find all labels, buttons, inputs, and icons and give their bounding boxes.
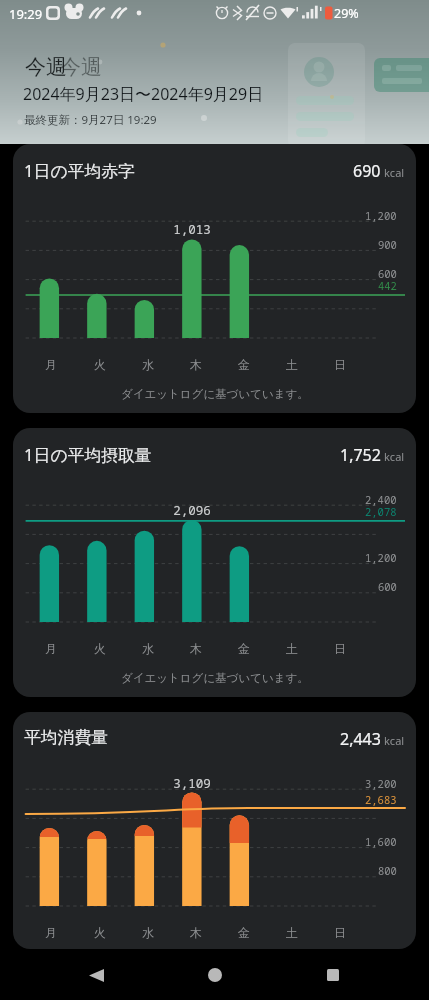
staticText: kcal bbox=[384, 165, 405, 180]
staticText: kcal bbox=[384, 733, 405, 748]
staticText: 金 bbox=[238, 925, 250, 940]
staticText: 今週 bbox=[60, 54, 102, 80]
staticText: 3,109 bbox=[173, 775, 211, 792]
staticText: 最終更新：9月27日 19:29 bbox=[24, 112, 157, 128]
staticText: 木 bbox=[190, 357, 202, 372]
staticText: 442 bbox=[378, 279, 397, 293]
staticText: 690 bbox=[353, 160, 381, 182]
staticText: 火 bbox=[94, 641, 106, 656]
staticText: 2,443 bbox=[340, 728, 381, 750]
button[interactable]: Home bbox=[192, 952, 238, 998]
button[interactable]: 平均消費量 bbox=[13, 712, 416, 949]
staticText: 水 bbox=[142, 641, 154, 656]
button[interactable]: 1日の平均摂取量 bbox=[13, 428, 416, 697]
staticText: 1,600 bbox=[365, 835, 397, 849]
staticText: 3,200 bbox=[365, 777, 397, 791]
staticText: 今週 bbox=[25, 54, 67, 80]
staticText: 600 bbox=[378, 267, 397, 281]
staticText: 2,096 bbox=[173, 502, 211, 519]
staticText: 土 bbox=[286, 925, 298, 940]
staticText: 月 bbox=[45, 925, 57, 940]
staticText: 1,200 bbox=[365, 209, 397, 223]
staticText: 1,200 bbox=[365, 551, 397, 565]
staticText: 2024年9月23日〜2024年9月29日 bbox=[23, 83, 264, 105]
staticText: ダイエットログに基づいています。 bbox=[121, 387, 309, 401]
staticText: 月 bbox=[45, 641, 57, 656]
staticText: 金 bbox=[238, 641, 250, 656]
staticText: 火 bbox=[94, 357, 106, 372]
staticText: 水 bbox=[142, 357, 154, 372]
staticText: 日 bbox=[334, 641, 346, 656]
staticText: 800 bbox=[378, 864, 397, 878]
staticText: 平均消費量 bbox=[24, 727, 108, 748]
staticText: 月 bbox=[45, 357, 57, 372]
staticText: 2,683 bbox=[365, 793, 397, 807]
staticText: 1,013 bbox=[173, 221, 211, 238]
staticText: 2,078 bbox=[365, 505, 397, 519]
staticText: 日 bbox=[334, 925, 346, 940]
staticText: 1日の平均摂取量 bbox=[24, 443, 152, 466]
button[interactable]: Back bbox=[73, 952, 119, 998]
staticText: kcal bbox=[384, 449, 405, 464]
staticText: 2,400 bbox=[365, 493, 397, 507]
button[interactable]: Recent apps bbox=[310, 952, 356, 998]
staticText: 木 bbox=[190, 925, 202, 940]
staticText: 日 bbox=[334, 357, 346, 372]
staticText: 1日の平均赤字 bbox=[24, 159, 135, 182]
staticText: 火 bbox=[94, 925, 106, 940]
staticText: 土 bbox=[286, 357, 298, 372]
staticText: 木 bbox=[190, 641, 202, 656]
button[interactable]: 1日の平均赤字 bbox=[13, 144, 416, 413]
staticText: 900 bbox=[378, 238, 397, 252]
staticText: 1,752 bbox=[340, 444, 381, 466]
staticText: 土 bbox=[286, 641, 298, 656]
staticText: 水 bbox=[142, 925, 154, 940]
staticText: ダイエットログに基づいています。 bbox=[121, 671, 309, 685]
staticText: 金 bbox=[238, 357, 250, 372]
staticText: 19:29 bbox=[9, 5, 43, 23]
staticText: 600 bbox=[378, 580, 397, 594]
staticText: 29% bbox=[334, 5, 359, 22]
